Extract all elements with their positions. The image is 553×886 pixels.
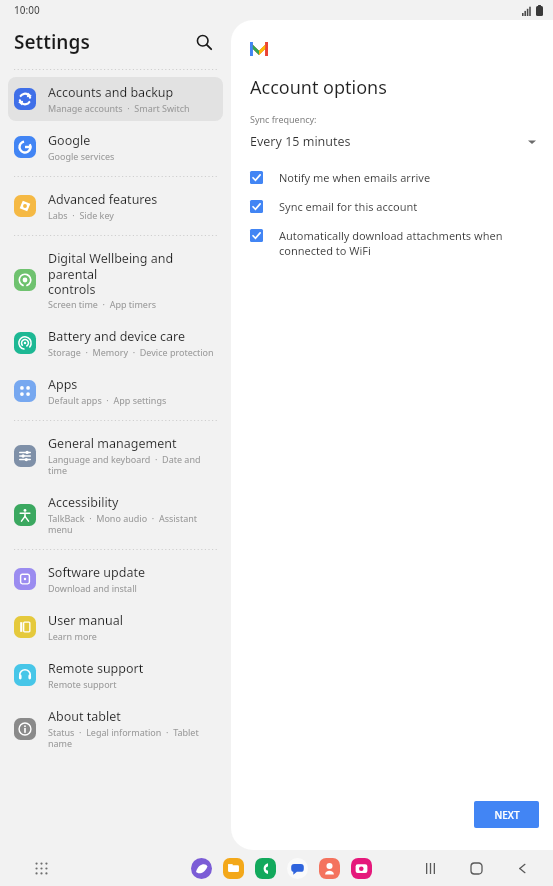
staticText: Notify me when emails arrive	[279, 170, 431, 185]
button[interactable]: Digital Wellbeing and parental controls	[8, 243, 223, 317]
staticText: Every 15 minutes	[250, 133, 351, 150]
button[interactable]: Contacts	[317, 856, 341, 880]
staticText: Digital Wellbeing and parental controls	[48, 250, 217, 297]
staticText: Learn more	[48, 630, 97, 642]
staticText: Automatically download attachments when …	[279, 228, 503, 258]
staticText: Accessibility	[48, 494, 119, 511]
button[interactable]: Accessibility	[8, 487, 223, 542]
staticText: Download and install	[48, 582, 137, 594]
staticText: Status · Legal information · Tablet name	[48, 726, 199, 749]
staticText: Battery and device care	[48, 328, 186, 345]
button[interactable]: Accounts and backup	[8, 77, 223, 121]
staticText: Advanced features	[48, 191, 158, 208]
staticText: Labs · Side key	[48, 209, 114, 221]
button[interactable]: Automatically download attachments when …	[250, 228, 537, 258]
staticText: Google services	[48, 150, 115, 162]
button[interactable]: Software update	[8, 557, 223, 601]
button[interactable]: About tablet	[8, 701, 223, 756]
staticText: Remote support	[48, 660, 144, 677]
button[interactable]: Advanced features	[8, 184, 223, 228]
button[interactable]: Battery and device care	[8, 321, 223, 365]
staticText: Settings	[14, 29, 90, 55]
staticText: Remote support	[48, 678, 117, 690]
staticText: Account options	[250, 75, 387, 100]
staticText: Software update	[48, 564, 145, 581]
button[interactable]: Home	[465, 857, 487, 879]
staticText: TalkBack · Mono audio · Assistant menu	[48, 512, 198, 535]
button[interactable]: Remote support	[8, 653, 223, 697]
staticText: Apps	[48, 376, 78, 393]
button[interactable]: User manual	[8, 605, 223, 649]
button[interactable]: Gallery	[349, 856, 373, 880]
button[interactable]: My Files	[221, 856, 245, 880]
staticText: Screen time · App timers	[48, 298, 156, 310]
button[interactable]: Sync email for this account	[250, 199, 537, 214]
button[interactable]: Recents	[419, 857, 441, 879]
staticText: Default apps · App settings	[48, 394, 167, 406]
staticText: About tablet	[48, 708, 121, 725]
button[interactable]: Search	[191, 29, 217, 55]
button[interactable]: Back	[511, 857, 533, 879]
staticText: Google	[48, 132, 91, 149]
staticText: Storage · Memory · Device protection	[48, 346, 214, 358]
button[interactable]: Google	[8, 125, 223, 169]
button[interactable]: Apps	[8, 369, 223, 413]
staticText: 10:00	[14, 3, 40, 17]
staticText: Manage accounts · Smart Switch	[48, 102, 190, 114]
staticText: Accounts and backup	[48, 84, 174, 101]
button[interactable]: Phone	[253, 856, 277, 880]
staticText: NEXT	[494, 808, 520, 822]
button[interactable]: Messages	[285, 856, 309, 880]
staticText: Sync frequency:	[250, 113, 317, 125]
staticText: Language and keyboard · Date and time	[48, 453, 201, 476]
button[interactable]: Every 15 minutes	[250, 133, 537, 150]
staticText: Sync email for this account	[279, 199, 418, 214]
button[interactable]: Notify me when emails arrive	[250, 170, 537, 185]
button[interactable]: Internet	[189, 856, 213, 880]
staticText: General management	[48, 435, 177, 452]
button[interactable]: General management	[8, 428, 223, 483]
button[interactable]: All apps	[30, 857, 52, 879]
button[interactable]: NEXT	[474, 801, 539, 828]
staticText: User manual	[48, 612, 123, 629]
